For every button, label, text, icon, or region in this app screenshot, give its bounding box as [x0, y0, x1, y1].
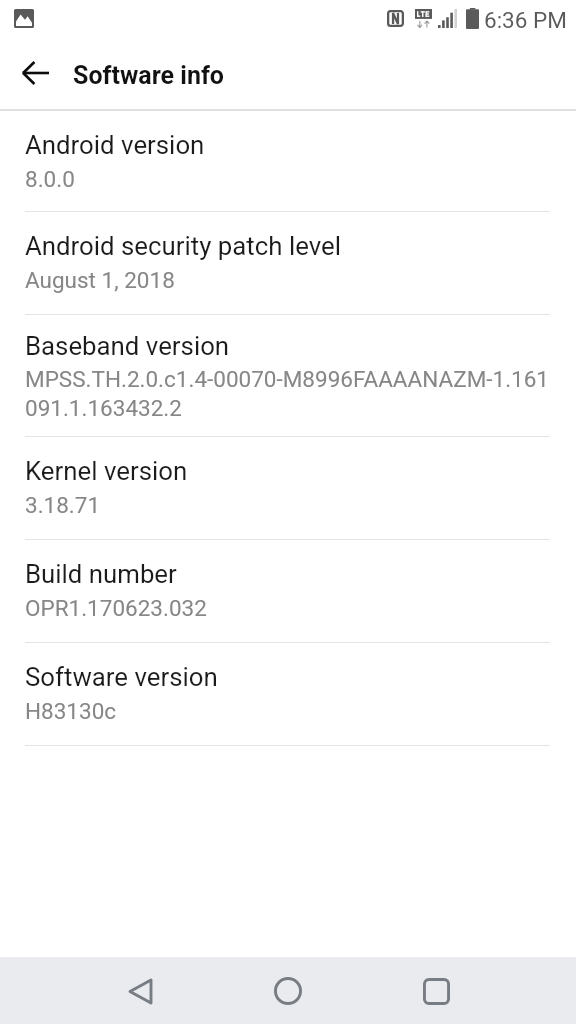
- button[interactable]: Android security patch level: [0, 212, 576, 315]
- button[interactable]: Recent apps: [404, 959, 468, 1023]
- staticText: H83130c: [25, 698, 117, 724]
- button[interactable]: Navigate up: [13, 51, 57, 95]
- staticText: Android security patch level: [25, 231, 341, 261]
- staticText: Software version: [25, 662, 218, 692]
- button[interactable]: Home: [256, 959, 320, 1023]
- staticText: August 1, 2018: [25, 267, 175, 293]
- button[interactable]: Android version: [0, 111, 576, 212]
- staticText: 8.0.0: [25, 166, 75, 192]
- staticText: Baseband version: [25, 331, 230, 361]
- staticText: 091.1.163432.2: [25, 395, 182, 421]
- button[interactable]: Kernel version: [0, 437, 576, 540]
- staticText: Android version: [25, 130, 205, 160]
- button[interactable]: Back: [108, 959, 172, 1023]
- staticText: Build number: [25, 559, 177, 589]
- staticText: MPSS.TH.2.0.c1.4-00070-M8996FAAAANAZM-1.…: [25, 366, 550, 392]
- staticText: 3.18.71: [25, 492, 101, 518]
- staticText: OPR1.170623.032: [25, 595, 207, 621]
- staticText: Kernel version: [25, 456, 188, 486]
- button[interactable]: Baseband version: [0, 315, 576, 437]
- button[interactable]: Build number: [0, 540, 576, 643]
- staticText: 6:36 PM: [484, 7, 567, 33]
- staticText: Software info: [73, 61, 224, 90]
- button[interactable]: Software version: [0, 643, 576, 746]
